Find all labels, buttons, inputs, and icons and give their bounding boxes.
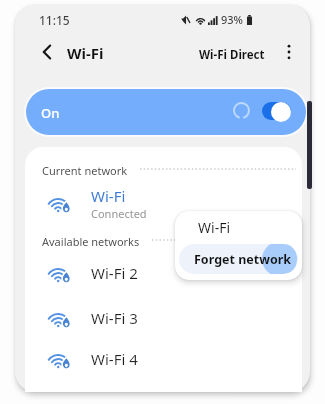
button[interactable]: Wi-Fi xyxy=(175,212,302,242)
staticText: Wi-Fi xyxy=(198,218,231,237)
staticText: 11:15 xyxy=(39,12,70,28)
staticText: Wi-Fi xyxy=(91,186,126,206)
staticText: Wi-Fi 4 xyxy=(91,349,138,369)
button[interactable]: Wi-Fi 4 xyxy=(20,342,290,376)
staticText: 93% xyxy=(221,12,243,27)
staticText: Forget network xyxy=(194,251,292,268)
button[interactable]: Wi-Fi 2 xyxy=(20,256,290,290)
staticText: Wi-Fi 2 xyxy=(91,263,138,283)
staticText: Connected xyxy=(91,206,147,220)
button[interactable]: Wi-Fi on xyxy=(255,99,291,123)
button[interactable]: Wi-Fi xyxy=(20,186,290,220)
staticText: Available networks xyxy=(42,234,140,249)
staticText: Current network xyxy=(42,163,128,178)
button[interactable]: Navigate up xyxy=(36,42,56,62)
button[interactable]: Wi-Fi Direct xyxy=(199,47,265,63)
staticText: Wi-Fi 3 xyxy=(91,308,138,328)
button[interactable]: Wi-Fi xyxy=(67,43,104,63)
staticText: On xyxy=(41,104,60,122)
button[interactable]: More options xyxy=(281,42,297,62)
button[interactable]: Wi-Fi 3 xyxy=(20,301,290,335)
button[interactable]: On xyxy=(26,89,306,135)
button[interactable]: Forget network xyxy=(179,244,298,274)
